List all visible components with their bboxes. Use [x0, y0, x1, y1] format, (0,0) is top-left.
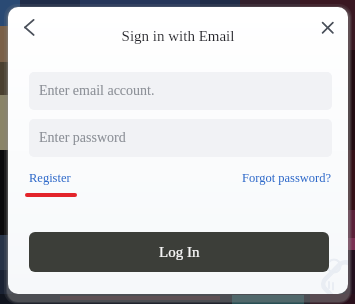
button[interactable]	[15, 14, 44, 41]
staticText: Sign in with Email	[8, 28, 348, 45]
button[interactable]: Enter email account.	[29, 72, 332, 110]
button[interactable]	[314, 15, 342, 41]
button[interactable]: Enter password	[29, 119, 332, 157]
staticText: Log In	[159, 244, 200, 261]
staticText: Enter password	[39, 130, 126, 146]
button[interactable]: Forgot password?	[242, 171, 332, 185]
staticText: Enter email account.	[39, 83, 155, 99]
button[interactable]: Register	[29, 171, 71, 185]
button[interactable]: Log In	[29, 232, 329, 272]
